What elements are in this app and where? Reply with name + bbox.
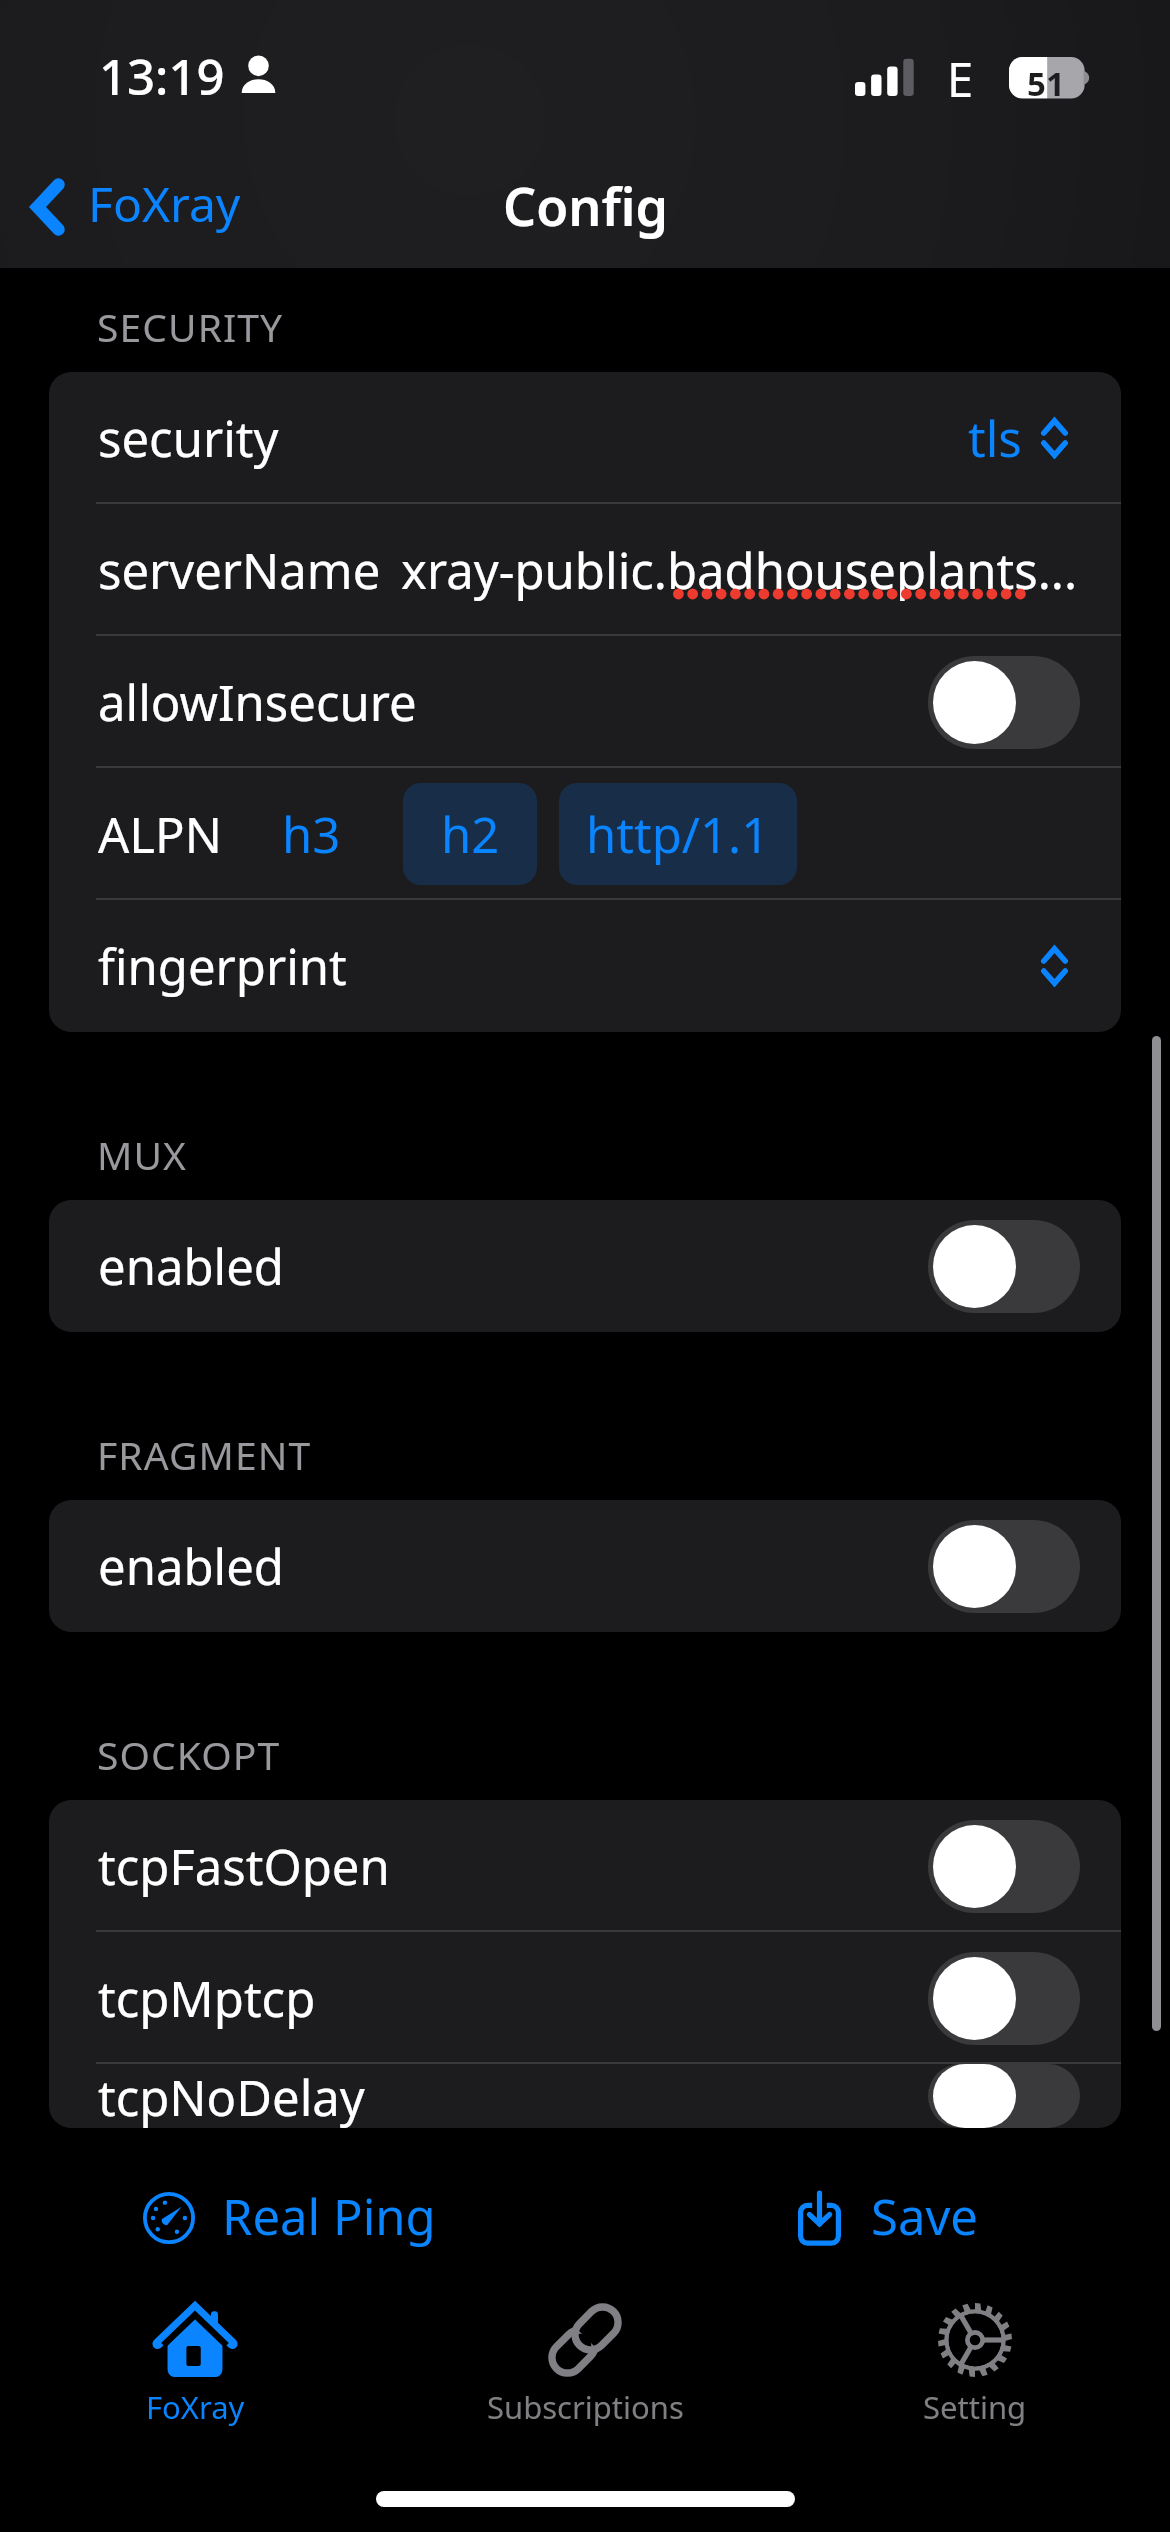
- staticText: fingerprint: [98, 933, 347, 1000]
- button[interactable]: tcpFastOpen: [49, 1800, 1121, 1932]
- button[interactable]: Toggle: [928, 1220, 1080, 1313]
- staticText: tls: [968, 405, 1022, 472]
- button[interactable]: Real Ping: [0, 2172, 582, 2264]
- staticText: Subscriptions: [487, 2386, 684, 2428]
- staticText: allowInsecure: [98, 669, 417, 736]
- staticText: MUX: [97, 1128, 188, 1181]
- staticText: tcpNoDelay: [98, 2064, 365, 2128]
- staticText: serverName: [98, 537, 381, 604]
- button[interactable]: Toggle: [928, 1520, 1080, 1613]
- button[interactable]: Toggle: [928, 656, 1080, 749]
- button[interactable]: fingerprint: [49, 900, 1121, 1032]
- staticText: enabled: [98, 1533, 284, 1600]
- button[interactable]: h2: [403, 783, 537, 885]
- staticText: FoXray: [88, 171, 241, 236]
- staticText: http/1.1: [586, 801, 770, 868]
- staticText: security: [98, 405, 279, 472]
- staticText: 51: [1027, 61, 1065, 103]
- staticText: Config: [503, 170, 668, 241]
- staticText: FoXray: [146, 2386, 245, 2428]
- button[interactable]: http/1.1: [559, 783, 797, 885]
- button[interactable]: allowInsecure: [49, 636, 1121, 768]
- staticText: 13:19: [99, 43, 225, 110]
- button[interactable]: enabled: [49, 1200, 1121, 1332]
- staticText: h2: [441, 801, 500, 868]
- staticText: tcpMptcp: [98, 1965, 316, 2032]
- staticText: xray-public.badhouseplants...: [401, 537, 1078, 604]
- button[interactable]: Save: [595, 2172, 1170, 2264]
- button[interactable]: Subscriptions: [390, 2296, 780, 2446]
- button[interactable]: serverName: [49, 504, 1121, 636]
- button[interactable]: FoXray: [12, 156, 257, 245]
- button[interactable]: FoXray: [0, 2296, 390, 2446]
- button[interactable]: Toggle: [928, 1820, 1080, 1913]
- staticText: FRAGMENT: [97, 1428, 312, 1481]
- button[interactable]: tcpMptcp: [49, 1932, 1121, 2064]
- button[interactable]: ALPN: [49, 768, 1121, 900]
- staticText: ALPN: [98, 801, 222, 868]
- button[interactable]: enabled: [49, 1500, 1121, 1632]
- staticText: Save: [871, 2183, 978, 2250]
- staticText: Real Ping: [222, 2183, 436, 2250]
- staticText: SOCKOPT: [97, 1728, 281, 1781]
- button[interactable]: Toggle: [928, 1952, 1080, 2045]
- staticText: Setting: [923, 2386, 1027, 2428]
- button[interactable]: Toggle: [928, 2064, 1080, 2128]
- button[interactable]: Setting: [780, 2296, 1170, 2446]
- button[interactable]: tcpNoDelay: [49, 2064, 1121, 2128]
- staticText: SECURITY: [97, 300, 284, 353]
- staticText: h3: [282, 801, 341, 868]
- staticText: enabled: [98, 1233, 284, 1300]
- staticText: E: [947, 47, 974, 111]
- button[interactable]: security: [49, 372, 1121, 504]
- staticText: tcpFastOpen: [98, 1833, 390, 1900]
